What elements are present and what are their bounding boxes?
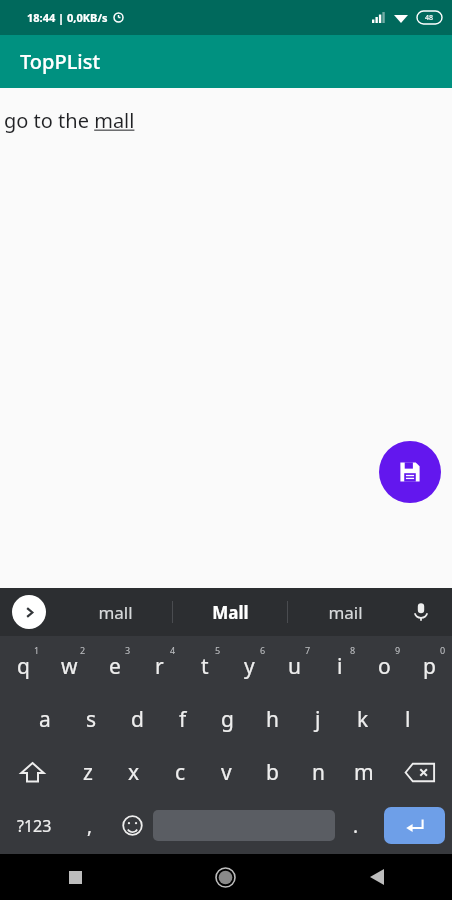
staticText: c bbox=[175, 758, 186, 787]
button[interactable]: l bbox=[385, 693, 430, 746]
staticText: 4 bbox=[170, 644, 176, 656]
button[interactable]: e bbox=[92, 640, 137, 693]
button[interactable]: Voice input bbox=[403, 594, 439, 630]
button[interactable]: r bbox=[137, 640, 182, 693]
staticText: 6 bbox=[260, 644, 266, 656]
button[interactable]: q bbox=[0, 640, 46, 693]
button[interactable]: Recents bbox=[0, 854, 150, 900]
button[interactable]: d bbox=[114, 693, 160, 746]
button[interactable]: Enter bbox=[384, 807, 445, 844]
staticText: k bbox=[357, 705, 369, 734]
staticText: i bbox=[337, 652, 343, 681]
button[interactable]: Home bbox=[150, 854, 301, 900]
staticText: b bbox=[266, 758, 279, 787]
staticText: 3 bbox=[125, 644, 131, 656]
staticText: d bbox=[131, 705, 144, 734]
button[interactable]: , bbox=[69, 799, 111, 852]
staticText: mall bbox=[98, 601, 133, 624]
button[interactable]: ?123 bbox=[0, 799, 69, 852]
staticText: 0 bbox=[440, 644, 446, 656]
staticText: 8 bbox=[350, 644, 356, 656]
staticText: 9 bbox=[395, 644, 401, 656]
button[interactable]: c bbox=[157, 746, 203, 799]
staticText: h bbox=[266, 705, 279, 734]
staticText: w bbox=[61, 652, 78, 681]
button[interactable]: Backspace bbox=[387, 746, 452, 799]
staticText: 48 bbox=[425, 13, 434, 23]
staticText: r bbox=[155, 652, 164, 681]
staticText: 5 bbox=[215, 644, 221, 656]
button[interactable]: w bbox=[46, 640, 92, 693]
staticText: ?123 bbox=[17, 815, 52, 837]
staticText: o bbox=[378, 652, 391, 681]
staticText: , bbox=[87, 813, 93, 839]
button[interactable]: Shift bbox=[0, 746, 65, 799]
button[interactable]: s bbox=[68, 693, 114, 746]
button[interactable]: mall bbox=[58, 588, 172, 636]
button[interactable]: Expand suggestions bbox=[12, 595, 46, 629]
button[interactable]: n bbox=[295, 746, 341, 799]
staticText: y bbox=[244, 652, 255, 681]
staticText: 2 bbox=[80, 644, 86, 656]
staticText: p bbox=[423, 652, 436, 681]
button[interactable]: h bbox=[250, 693, 295, 746]
button[interactable]: y bbox=[227, 640, 272, 693]
staticText: j bbox=[315, 705, 321, 734]
staticText: z bbox=[83, 758, 93, 787]
button[interactable]: b bbox=[249, 746, 295, 799]
staticText: 18:44 | 0,0KB/s bbox=[27, 10, 108, 25]
button[interactable]: f bbox=[160, 693, 205, 746]
button[interactable]: p bbox=[407, 640, 452, 693]
staticText: TopPList bbox=[20, 48, 101, 75]
staticText: e bbox=[109, 652, 121, 681]
staticText: s bbox=[86, 705, 97, 734]
button[interactable]: Emoji bbox=[111, 799, 153, 852]
button[interactable]: v bbox=[203, 746, 249, 799]
staticText: l bbox=[405, 705, 411, 734]
button[interactable]: o bbox=[362, 640, 407, 693]
staticText: q bbox=[17, 652, 30, 681]
button[interactable]: g bbox=[205, 693, 250, 746]
staticText: g bbox=[221, 705, 234, 734]
button[interactable]: . bbox=[335, 799, 377, 852]
staticText: x bbox=[128, 758, 140, 787]
staticText: t bbox=[201, 652, 209, 681]
staticText: mail bbox=[328, 601, 363, 624]
staticText: go to the mall bbox=[4, 107, 135, 134]
button[interactable]: k bbox=[340, 693, 385, 746]
staticText: 1 bbox=[34, 644, 40, 656]
staticText: a bbox=[39, 705, 51, 734]
staticText: f bbox=[179, 705, 187, 734]
button[interactable]: mail bbox=[288, 588, 402, 636]
staticText: m bbox=[354, 758, 374, 787]
staticText: v bbox=[221, 758, 232, 787]
button[interactable]: a bbox=[22, 693, 68, 746]
button[interactable]: t bbox=[182, 640, 227, 693]
staticText: 7 bbox=[305, 644, 311, 656]
button[interactable]: Back bbox=[301, 854, 452, 900]
button[interactable]: m bbox=[341, 746, 387, 799]
button[interactable]: Save bbox=[379, 441, 441, 503]
staticText: Mall bbox=[212, 601, 249, 624]
staticText: . bbox=[353, 813, 359, 839]
button[interactable]: j bbox=[295, 693, 340, 746]
button[interactable]: i bbox=[317, 640, 362, 693]
button[interactable]: Mall bbox=[173, 588, 287, 636]
staticText: n bbox=[312, 758, 325, 787]
button[interactable]: x bbox=[111, 746, 157, 799]
staticText: u bbox=[288, 652, 301, 681]
button[interactable]: z bbox=[65, 746, 111, 799]
button[interactable]: u bbox=[272, 640, 317, 693]
